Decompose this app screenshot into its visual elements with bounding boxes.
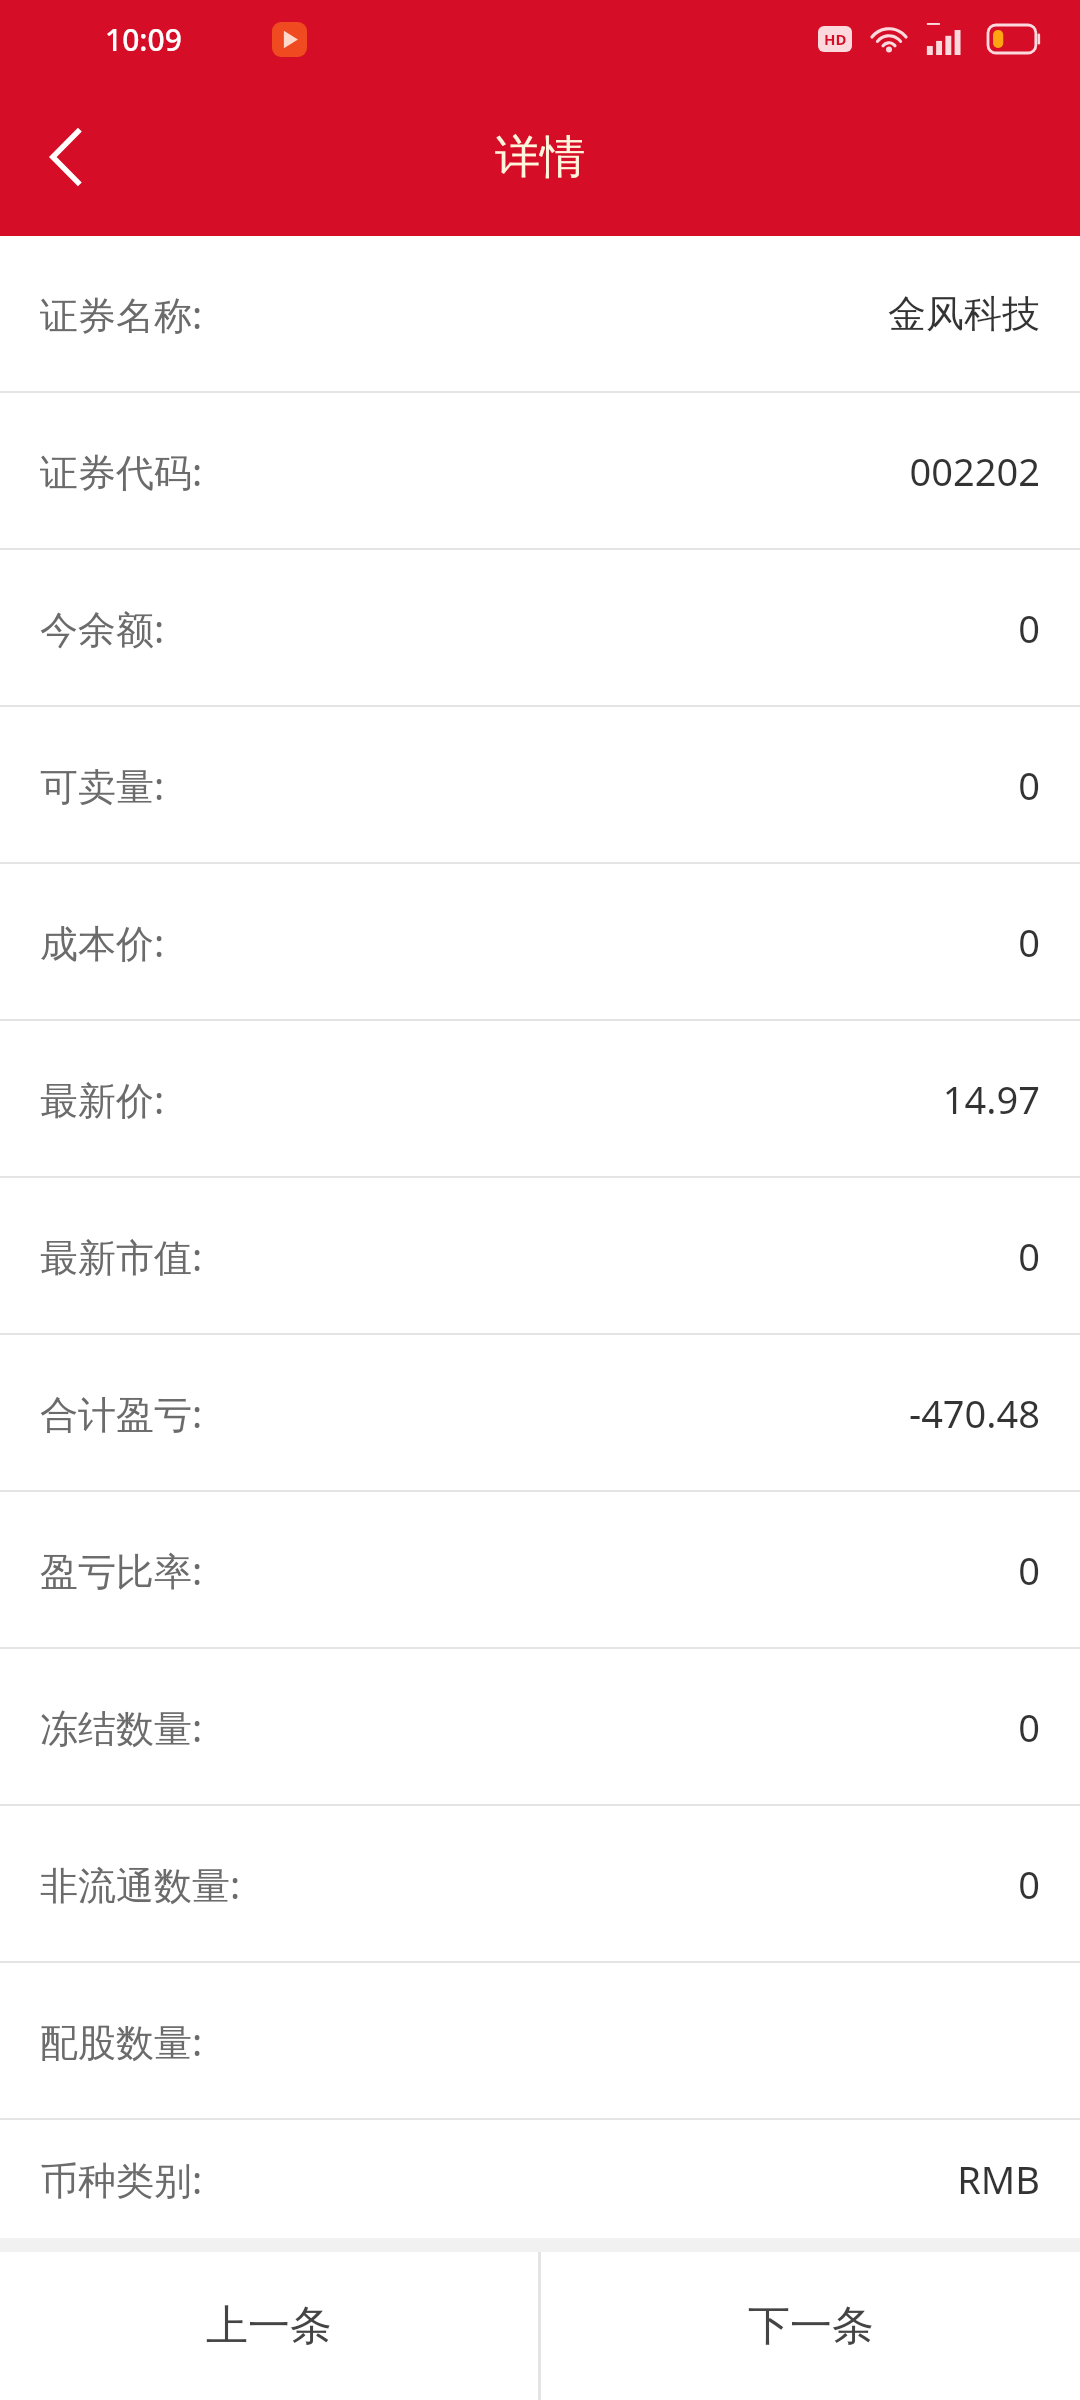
- button[interactable]: 配股数量:: [0, 1963, 1080, 2118]
- staticText: 证券代码:: [40, 445, 203, 497]
- staticText: HD: [824, 29, 847, 49]
- staticText: 冻结数量:: [40, 1701, 203, 1753]
- button[interactable]: 最新价:: [0, 1021, 1080, 1176]
- staticText: 最新市值:: [40, 1230, 203, 1282]
- button[interactable]: 非流通数量:: [0, 1806, 1080, 1961]
- staticText: 10:09: [105, 19, 182, 60]
- staticText: RMB: [957, 2153, 1040, 2205]
- staticText: 下一条: [748, 2300, 874, 2353]
- button[interactable]: 最新市值:: [0, 1178, 1080, 1333]
- staticText: 币种类别:: [40, 2153, 203, 2205]
- button[interactable]: 合计盈亏:: [0, 1335, 1080, 1490]
- staticText: 非流通数量:: [40, 1858, 241, 1910]
- button[interactable]: 证券代码:: [0, 393, 1080, 548]
- button[interactable]: 币种类别:: [0, 2120, 1080, 2238]
- staticText: 上一条: [206, 2300, 332, 2353]
- button[interactable]: 下一条: [541, 2252, 1080, 2400]
- button[interactable]: 上一条: [0, 2252, 538, 2400]
- button[interactable]: 成本价:: [0, 864, 1080, 1019]
- staticText: 最新价:: [40, 1073, 165, 1125]
- staticText: 0: [1018, 1230, 1040, 1282]
- staticText: 合计盈亏:: [40, 1387, 203, 1439]
- button[interactable]: Back: [0, 78, 130, 236]
- staticText: 证券名称:: [40, 288, 203, 340]
- staticText: 可卖量:: [40, 759, 165, 811]
- staticText: 配股数量:: [40, 2015, 203, 2067]
- staticText: 盈亏比率:: [40, 1544, 203, 1596]
- staticText: 详情: [495, 129, 585, 186]
- staticText: 0: [1018, 1544, 1040, 1596]
- staticText: 0: [1018, 602, 1040, 654]
- staticText: 0: [1018, 1701, 1040, 1753]
- staticText: 成本价:: [40, 916, 165, 968]
- staticText: 14.97: [942, 1073, 1040, 1125]
- staticText: 金风科技: [888, 290, 1040, 338]
- button[interactable]: 今余额:: [0, 550, 1080, 705]
- staticText: 002202: [909, 445, 1040, 497]
- button[interactable]: 证券名称:: [0, 236, 1080, 391]
- staticText: 0: [1018, 1858, 1040, 1910]
- staticText: -470.48: [908, 1387, 1040, 1439]
- button[interactable]: 冻结数量:: [0, 1649, 1080, 1804]
- button[interactable]: 盈亏比率:: [0, 1492, 1080, 1647]
- staticText: 0: [1018, 916, 1040, 968]
- staticText: 0: [1018, 759, 1040, 811]
- staticText: 今余额:: [40, 602, 165, 654]
- button[interactable]: 可卖量:: [0, 707, 1080, 862]
